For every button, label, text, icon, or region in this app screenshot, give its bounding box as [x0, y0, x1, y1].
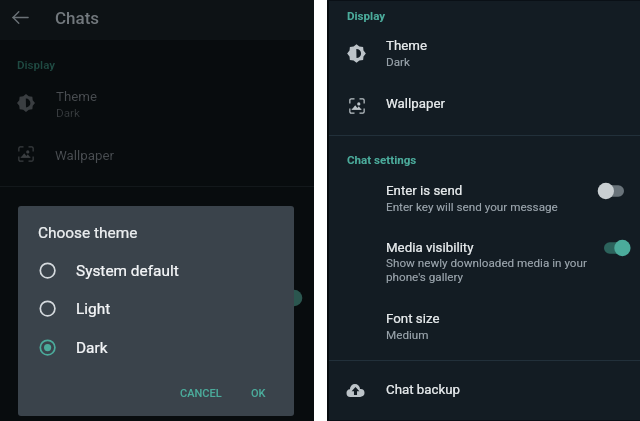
- staticText: Theme: [56, 89, 98, 105]
- button[interactable]: Enter is send: [327, 178, 640, 220]
- staticText: Media visibility: [386, 240, 474, 256]
- staticText: System default: [76, 262, 179, 280]
- staticText: Chat settings: [347, 153, 417, 167]
- button[interactable]: [596, 178, 632, 204]
- button[interactable]: Chat backup: [327, 371, 640, 411]
- button[interactable]: Theme: [327, 32, 640, 78]
- staticText: OK: [251, 387, 266, 400]
- button[interactable]: Media visibility: [327, 235, 640, 291]
- button[interactable]: Light: [18, 291, 294, 329]
- staticText: Display: [17, 58, 56, 72]
- staticText: Dark: [386, 55, 410, 69]
- button[interactable]: CANCEL: [180, 387, 222, 400]
- button[interactable]: Dark: [18, 330, 294, 368]
- staticText: Show newly downloaded media in your phon…: [386, 256, 587, 284]
- button[interactable]: Font size: [327, 306, 640, 348]
- button[interactable]: OK: [251, 387, 266, 400]
- staticText: Display: [347, 9, 386, 23]
- button[interactable]: Wallpaper: [327, 85, 640, 125]
- staticText: Enter key will send your message: [386, 200, 558, 214]
- staticText: Enter is send: [386, 183, 463, 199]
- staticText: Light: [76, 300, 111, 318]
- staticText: Font size: [386, 311, 440, 327]
- button[interactable]: Back: [6, 3, 34, 31]
- staticText: CANCEL: [180, 387, 222, 400]
- staticText: Chats: [55, 8, 100, 28]
- staticText: Chat backup: [386, 382, 461, 398]
- button[interactable]: Wallpaper: [0, 137, 314, 173]
- staticText: Wallpaper: [386, 96, 446, 112]
- staticText: Choose theme: [38, 224, 138, 242]
- staticText: Theme: [386, 38, 428, 54]
- button[interactable]: System default: [18, 253, 294, 291]
- staticText: Wallpaper: [55, 148, 115, 164]
- button[interactable]: Theme: [0, 84, 314, 128]
- button[interactable]: [596, 235, 632, 261]
- staticText: Dark: [76, 339, 108, 357]
- staticText: Medium: [386, 328, 429, 342]
- staticText: Dark: [56, 106, 80, 120]
